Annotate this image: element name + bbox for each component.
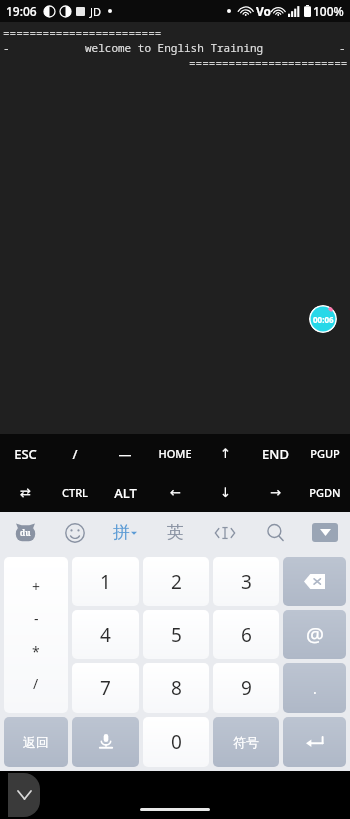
button[interactable]: ← — [150, 473, 200, 512]
button[interactable]: Period — [283, 663, 346, 713]
staticText: 9 — [241, 675, 252, 701]
staticText: / — [72, 445, 78, 463]
staticText: 英 — [167, 522, 184, 543]
staticText: ↑ — [220, 446, 231, 461]
button[interactable]: CTRL — [50, 473, 100, 512]
staticText: ======================== — [3, 25, 162, 40]
staticText: 5 — [171, 622, 182, 648]
button[interactable]: END — [250, 434, 300, 473]
button[interactable]: Backspace — [283, 557, 346, 606]
button[interactable]: → — [250, 473, 300, 512]
staticText: 拼 — [113, 522, 130, 543]
button[interactable]: At sign — [283, 610, 346, 659]
staticText: 19:06 — [6, 3, 37, 19]
button[interactable]: Operators — [4, 557, 68, 713]
button[interactable]: Collapse keyboard — [300, 512, 350, 553]
button[interactable]: 符号 — [213, 717, 279, 767]
button[interactable]: 返回 — [4, 717, 68, 767]
staticText: JD — [90, 4, 102, 19]
staticText: HOME — [158, 446, 192, 461]
button[interactable]: Search — [250, 512, 300, 553]
staticText: - — [34, 609, 39, 628]
staticText: CTRL — [62, 485, 88, 500]
button[interactable]: Baidu input — [0, 512, 50, 553]
button[interactable]: 1 — [72, 557, 139, 606]
button[interactable]: Enter — [283, 717, 346, 767]
staticText: PGUP — [310, 446, 340, 461]
staticText: ← — [170, 485, 181, 500]
button[interactable]: ↑ — [200, 434, 250, 473]
staticText: 100% — [313, 3, 344, 19]
button[interactable]: ESC — [0, 434, 50, 473]
staticText: 1 — [100, 569, 111, 595]
button[interactable]: 6 — [213, 610, 279, 659]
button[interactable]: 7 — [72, 663, 139, 713]
staticText: welcome to English Training — [85, 40, 264, 55]
button[interactable]: Pinyin mode — [100, 512, 150, 553]
button[interactable]: English mode — [150, 512, 200, 553]
staticText: → — [270, 485, 281, 500]
button[interactable]: 0 — [143, 717, 209, 767]
button[interactable]: Voice input — [72, 717, 139, 767]
button[interactable]: — — [100, 434, 150, 473]
staticText: 返回 — [23, 734, 49, 750]
staticText: ESC — [14, 445, 37, 463]
staticText: 0 — [171, 729, 182, 755]
button[interactable]: Hide keyboard — [8, 773, 40, 817]
button[interactable]: / — [50, 434, 100, 473]
staticText: 2 — [171, 569, 182, 595]
staticText: / — [33, 674, 39, 693]
staticText: 6 — [241, 622, 252, 648]
button[interactable]: Cursor move — [200, 512, 250, 553]
staticText: 00:06 — [313, 314, 334, 325]
staticText: + — [32, 577, 41, 596]
button[interactable]: 5 — [143, 610, 209, 659]
button[interactable]: ↓ — [200, 473, 250, 512]
button[interactable]: HOME — [150, 434, 200, 473]
button[interactable]: 3 — [213, 557, 279, 606]
button[interactable]: ALT — [100, 473, 150, 512]
staticText: 8 — [171, 675, 182, 701]
staticText: 3 — [241, 569, 252, 595]
staticText: Vo — [256, 3, 272, 19]
button[interactable]: 4 — [72, 610, 139, 659]
button[interactable]: Timer 00:06 — [309, 305, 337, 333]
staticText: 符号 — [233, 734, 259, 750]
staticText: . — [313, 679, 317, 698]
staticText: ======================== — [189, 55, 348, 70]
staticText: 7 — [100, 675, 111, 701]
staticText: ↓ — [220, 485, 231, 500]
staticText: END — [262, 445, 289, 463]
button[interactable]: 2 — [143, 557, 209, 606]
staticText: PGDN — [309, 485, 341, 500]
staticText: - — [339, 40, 346, 55]
button[interactable]: PGUP — [300, 434, 350, 473]
button[interactable]: PGDN — [300, 473, 350, 512]
button[interactable]: 8 — [143, 663, 209, 713]
staticText: - — [3, 40, 10, 55]
staticText: * — [32, 642, 40, 661]
staticText: du — [20, 527, 31, 538]
staticText: — — [118, 445, 132, 463]
staticText: @ — [306, 621, 324, 648]
button[interactable]: 9 — [213, 663, 279, 713]
staticText: ⇄ — [20, 485, 31, 500]
button[interactable]: Emoji — [50, 512, 100, 553]
staticText: ALT — [114, 484, 137, 502]
button[interactable]: ⇄ — [0, 473, 50, 512]
staticText: 4 — [100, 622, 111, 648]
